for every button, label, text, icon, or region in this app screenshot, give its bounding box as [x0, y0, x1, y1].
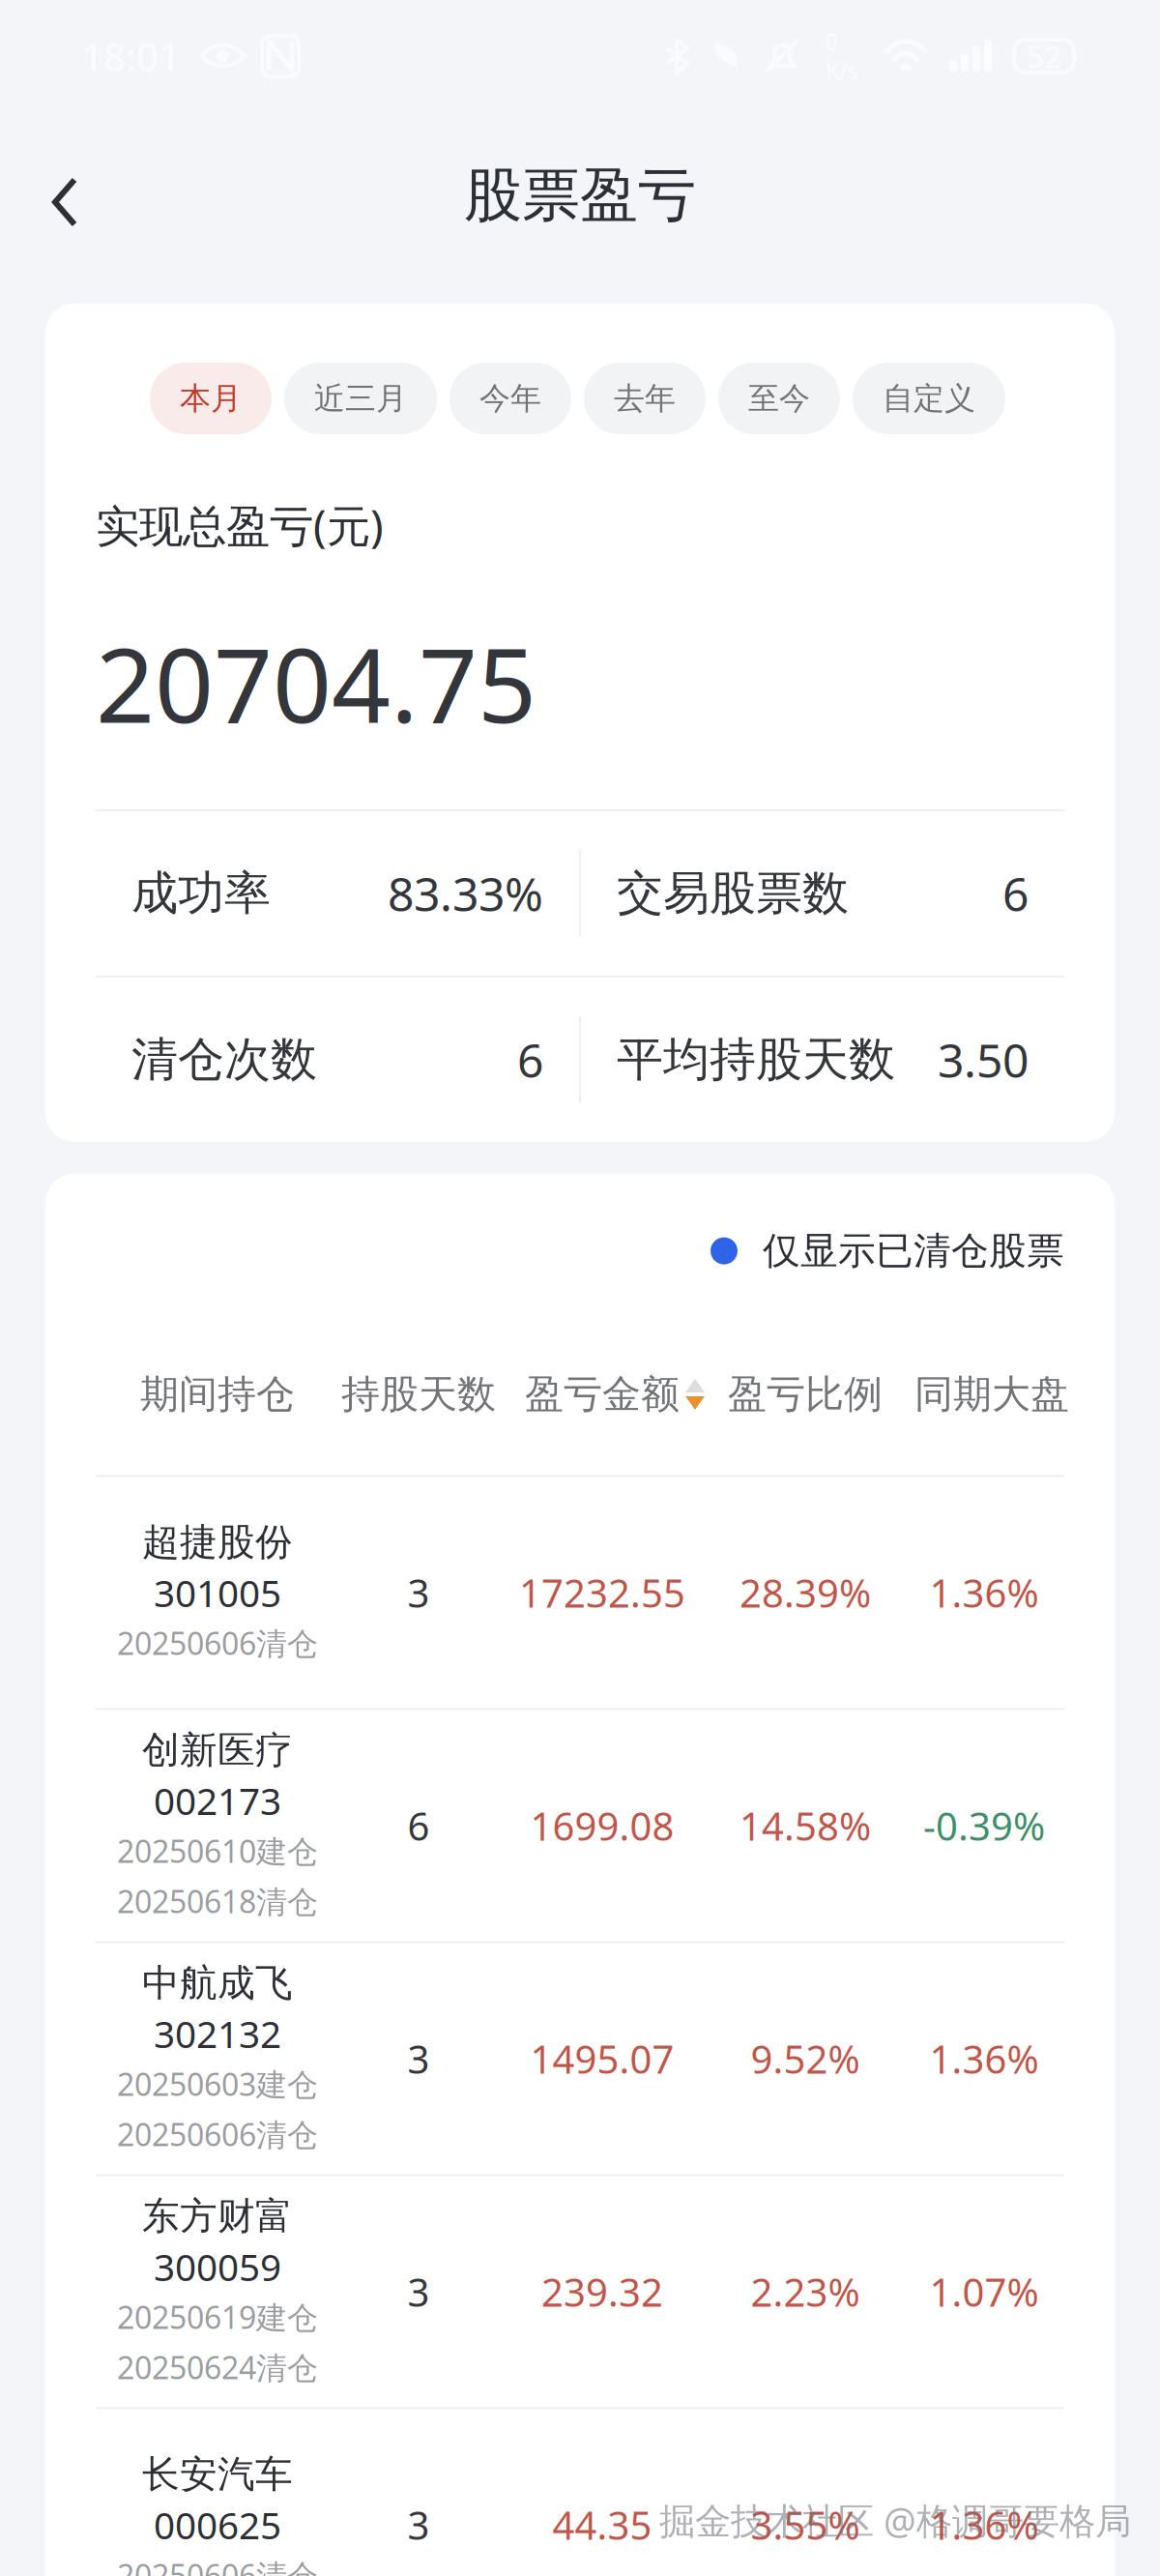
staticText: 3.50: [938, 1029, 1029, 1090]
staticText: 股票盈亏: [464, 160, 696, 231]
staticText: 盈亏金额: [525, 1370, 680, 1418]
staticText: 000625: [154, 2500, 281, 2550]
staticText: 300059: [154, 2242, 281, 2291]
staticText: 1699.08: [530, 1800, 674, 1851]
staticText: 2.23%: [751, 2266, 860, 2317]
staticText: 1495.07: [530, 2033, 674, 2084]
button[interactable]: 近三月: [284, 363, 437, 434]
staticText: 239.32: [541, 2266, 663, 2317]
staticText: 3: [407, 1567, 430, 1618]
staticText: 至今: [748, 379, 810, 417]
staticText: 自定义: [883, 379, 975, 417]
staticText: 301005: [154, 1568, 281, 1617]
button[interactable]: 盈亏金额: [498, 1370, 707, 1418]
button[interactable]: 去年: [584, 363, 706, 434]
staticText: 6: [407, 1800, 430, 1851]
staticText: 20250603建仓: [117, 2063, 318, 2104]
staticText: 1.36%: [929, 2033, 1039, 2084]
staticText: 3: [407, 2033, 430, 2084]
staticText: 今年: [479, 379, 541, 417]
staticText: 创新医疗: [142, 1727, 293, 1773]
staticText: 盈亏比例: [728, 1370, 883, 1418]
staticText: 仅显示已清仓股票: [763, 1228, 1064, 1274]
staticText: 1.36%: [929, 2499, 1039, 2550]
staticText: 长安汽车: [142, 2451, 293, 2497]
staticText: 20704.75: [96, 614, 536, 751]
button[interactable]: 至今: [718, 363, 840, 434]
button[interactable]: 超捷股份: [96, 1477, 1064, 1708]
staticText: 9.52%: [751, 2033, 860, 2084]
staticText: 3: [407, 2499, 430, 2550]
staticText: 6: [517, 1029, 543, 1090]
staticText: 14.58%: [739, 1800, 871, 1851]
button[interactable]: 创新医疗: [96, 1710, 1064, 1941]
staticText: 本月: [180, 379, 242, 417]
button[interactable]: 自定义: [853, 363, 1005, 434]
button[interactable]: 东方财富: [96, 2176, 1064, 2407]
staticText: 近三月: [314, 379, 407, 417]
staticText: 1.36%: [929, 1567, 1039, 1618]
staticText: 28.39%: [739, 1567, 871, 1618]
button[interactable]: 本月: [150, 363, 272, 434]
button[interactable]: 今年: [449, 363, 571, 434]
staticText: 3.55%: [751, 2499, 860, 2550]
staticText: 44.35: [552, 2499, 652, 2550]
staticText: 20250606清仓: [117, 2554, 318, 2576]
staticText: 20250606清仓: [117, 1622, 318, 1663]
staticText: 1.07%: [929, 2266, 1039, 2317]
staticText: 交易股票数: [617, 865, 849, 922]
button[interactable]: 长安汽车: [96, 2409, 1064, 2576]
staticText: 20250606清仓: [117, 2113, 318, 2155]
button[interactable]: Back: [0, 113, 116, 250]
staticText: 17232.55: [519, 1567, 685, 1618]
staticText: 东方财富: [142, 2193, 293, 2239]
staticText: 持股天数: [341, 1370, 496, 1418]
staticText: 20250610建仓: [117, 1830, 318, 1871]
button[interactable]: 中航成飞: [96, 1943, 1064, 2174]
staticText: 20250624清仓: [117, 2347, 318, 2388]
staticText: 302132: [154, 2009, 281, 2058]
staticText: 3: [407, 2266, 430, 2317]
staticText: 6: [1002, 863, 1029, 924]
staticText: 清仓次数: [131, 1031, 317, 1088]
button[interactable]: 仅显示已清仓股票: [96, 1174, 1064, 1274]
staticText: 期间持仓: [140, 1370, 295, 1418]
staticText: 平均持股天数: [617, 1031, 895, 1088]
staticText: 20250619建仓: [117, 2296, 318, 2337]
staticText: 中航成飞: [142, 1960, 293, 2006]
staticText: 同期大盘: [914, 1370, 1069, 1418]
staticText: 002173: [154, 1776, 281, 1825]
staticText: 成功率: [131, 865, 271, 922]
staticText: 去年: [614, 379, 676, 417]
staticText: -0.39%: [923, 1800, 1045, 1851]
staticText: 20250618清仓: [117, 1880, 318, 1922]
staticText: 83.33%: [388, 863, 543, 924]
staticText: 掘金技术社区 @格调哥要格局: [659, 2496, 1131, 2544]
staticText: 超捷股份: [142, 1519, 293, 1565]
staticText: 实现总盈亏(元): [96, 496, 384, 554]
